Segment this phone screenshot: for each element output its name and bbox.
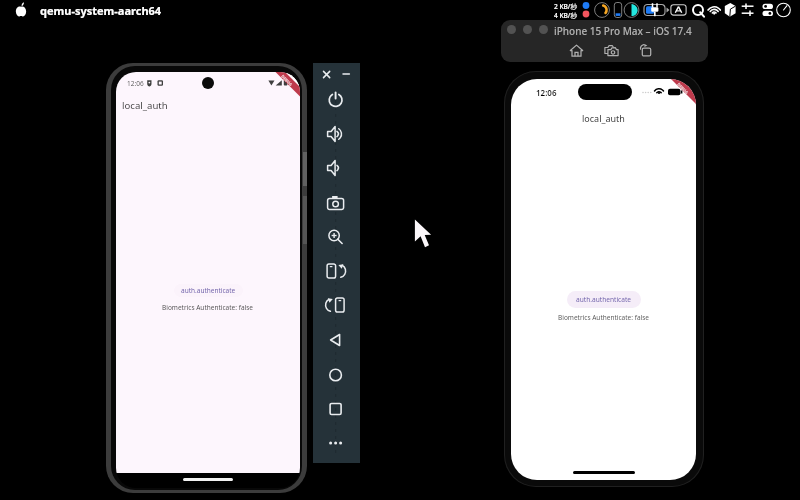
staticText: auth.authenticate bbox=[576, 295, 632, 304]
staticText: 2 KB/秒 4 KB/秒 bbox=[553, 2, 577, 20]
button[interactable]: Screenshot bbox=[604, 43, 619, 58]
button[interactable]: Power bbox=[326, 91, 347, 109]
button[interactable]: Zoom window bbox=[539, 25, 548, 34]
button[interactable]: Screenshot bbox=[326, 194, 347, 212]
button[interactable]: Home bbox=[326, 366, 347, 384]
staticText: DEBUG bbox=[676, 82, 690, 95]
button[interactable]: Minimize window bbox=[523, 25, 532, 34]
staticText: Biometrics Authenticate: false bbox=[558, 313, 650, 322]
button[interactable]: Recents bbox=[326, 400, 347, 418]
button[interactable]: Minimize bbox=[346, 65, 360, 83]
button[interactable]: More bbox=[326, 434, 347, 452]
button[interactable]: auth.authenticate bbox=[567, 291, 641, 308]
staticText: iPhone 15 Pro Max – iOS 17.4 bbox=[554, 24, 692, 38]
button[interactable]: Back bbox=[326, 331, 347, 349]
staticText: DEBUG bbox=[280, 74, 294, 87]
button[interactable]: Close bbox=[327, 65, 341, 83]
button[interactable]: Volume down bbox=[326, 159, 347, 177]
button[interactable]: Volume up bbox=[326, 125, 347, 143]
staticText: local_auth bbox=[122, 99, 168, 112]
button[interactable]: Rotate bbox=[639, 43, 654, 58]
button[interactable]: Close window bbox=[507, 25, 516, 34]
staticText: local_auth bbox=[582, 112, 625, 124]
button[interactable]: qemu-system-aarch64 bbox=[40, 3, 162, 18]
staticText: 12:06 bbox=[127, 79, 144, 88]
button[interactable]: Zoom bbox=[326, 228, 347, 246]
staticText: auth.authenticate bbox=[181, 286, 236, 295]
button[interactable]: Rotate left bbox=[326, 262, 347, 280]
button[interactable]: Rotate right bbox=[326, 296, 347, 314]
staticText: Biometrics Authenticate: false bbox=[162, 303, 254, 312]
button[interactable]: Apple menu bbox=[15, 2, 27, 17]
button[interactable]: Home bbox=[569, 43, 584, 58]
staticText: 12:06 bbox=[536, 87, 557, 98]
button[interactable]: auth.authenticate bbox=[174, 284, 243, 297]
